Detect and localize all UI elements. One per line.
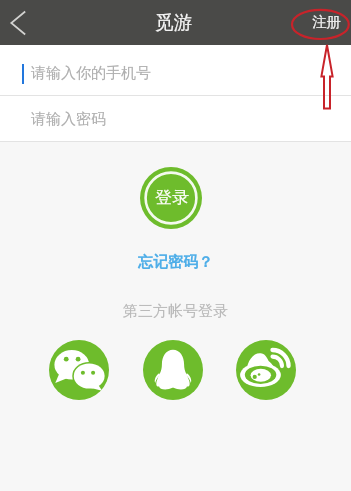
staticText: 登录	[155, 187, 189, 208]
button[interactable]: 注册	[298, 0, 351, 45]
staticText: 第三方帐号登录	[123, 302, 228, 321]
staticText: 注册	[312, 13, 341, 31]
button[interactable]: Back	[0, 0, 44, 45]
staticText: 觅游	[155, 11, 192, 34]
button[interactable]: Weibo login	[236, 340, 296, 400]
button[interactable]: 忘记密码？	[130, 249, 221, 276]
staticText: 忘记密码？	[138, 253, 213, 272]
button[interactable]: 登录	[140, 167, 202, 229]
button[interactable]: QQ login	[143, 340, 203, 400]
staticText: 请输入你的手机号	[31, 64, 151, 83]
button[interactable]: WeChat login	[49, 340, 109, 400]
staticText: 请输入密码	[31, 110, 106, 129]
